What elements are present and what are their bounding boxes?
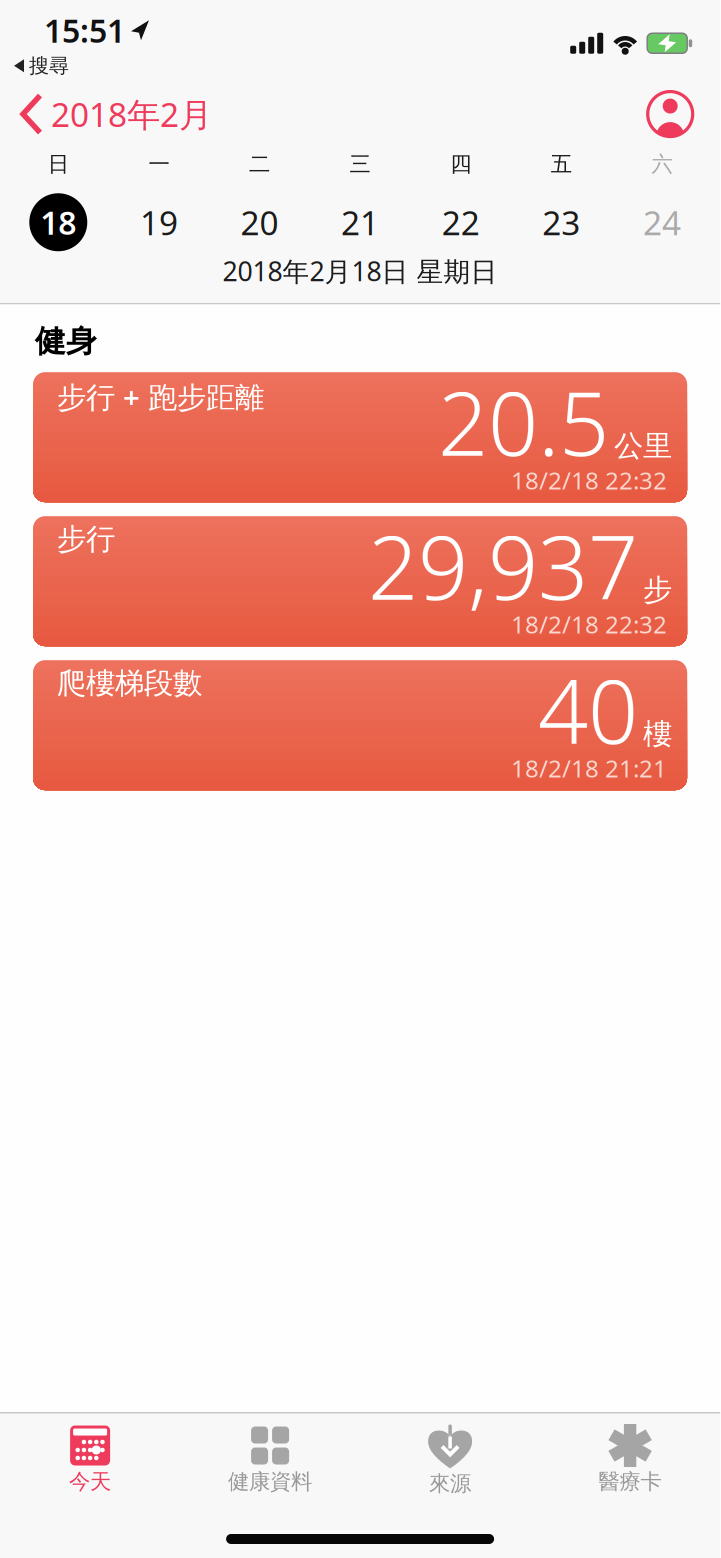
staticText: 18/2/18 22:32 [511, 464, 667, 496]
staticText: 四 [450, 151, 471, 177]
staticText: 一 [148, 151, 169, 177]
staticText: 公里 [614, 428, 672, 464]
button[interactable]: 21 [310, 200, 410, 244]
button[interactable]: 健康資料 [180, 1423, 360, 1495]
button[interactable]: 返回 2018年2月 [20, 92, 212, 136]
staticText: 日 [48, 151, 69, 177]
staticText: 29,937 [368, 507, 638, 624]
button[interactable]: 19 [109, 200, 209, 244]
staticText: 樓 [643, 716, 672, 752]
button[interactable]: 來源 [360, 1423, 540, 1497]
staticText: 醫療卡 [599, 1468, 662, 1495]
staticText: 20.5 [438, 363, 609, 480]
staticText: 18 [40, 201, 76, 243]
staticText: 15:51 [44, 9, 125, 51]
staticText: 步行 + 跑步距離 [57, 377, 264, 416]
button[interactable]: 22 [410, 200, 511, 244]
staticText: 23 [542, 200, 580, 244]
staticText: 2018年2月18日 星期日 [223, 253, 498, 289]
button[interactable]: 24 [612, 200, 712, 244]
staticText: 24 [643, 200, 681, 244]
staticText: 搜尋 [29, 53, 69, 78]
staticText: 18/2/18 22:32 [511, 608, 667, 640]
button[interactable]: 步行 [33, 516, 687, 646]
staticText: 步 [643, 572, 672, 608]
staticText: 今天 [69, 1468, 111, 1495]
button[interactable]: 23 [511, 200, 612, 244]
staticText: 爬樓梯段數 [57, 665, 202, 701]
button[interactable]: 返回「搜尋」 [14, 53, 69, 78]
staticText: 健身 [35, 322, 97, 360]
button[interactable]: 2月18日 [8, 193, 109, 251]
button[interactable]: 個人檔案 [646, 90, 694, 138]
staticText: 六 [651, 151, 672, 177]
staticText: 三 [350, 151, 371, 177]
button[interactable]: 20 [209, 200, 310, 244]
staticText: 21 [341, 200, 379, 244]
staticText: 五 [551, 151, 572, 177]
button[interactable]: 爬樓梯段數 [33, 660, 687, 790]
staticText: 步行 [57, 521, 115, 557]
staticText: 健康資料 [228, 1468, 312, 1495]
staticText: 20 [240, 200, 278, 244]
button[interactable]: 今天 [0, 1423, 180, 1495]
button[interactable]: 醫療卡 [540, 1423, 720, 1495]
staticText: 22 [442, 200, 480, 244]
staticText: 40 [538, 651, 638, 768]
staticText: 二 [249, 151, 270, 177]
button[interactable]: 步行 + 跑步距離 [33, 372, 687, 502]
staticText: 19 [140, 200, 178, 244]
staticText: 18/2/18 21:21 [511, 752, 667, 784]
staticText: 2018年2月 [51, 92, 212, 136]
staticText: 來源 [429, 1470, 471, 1497]
